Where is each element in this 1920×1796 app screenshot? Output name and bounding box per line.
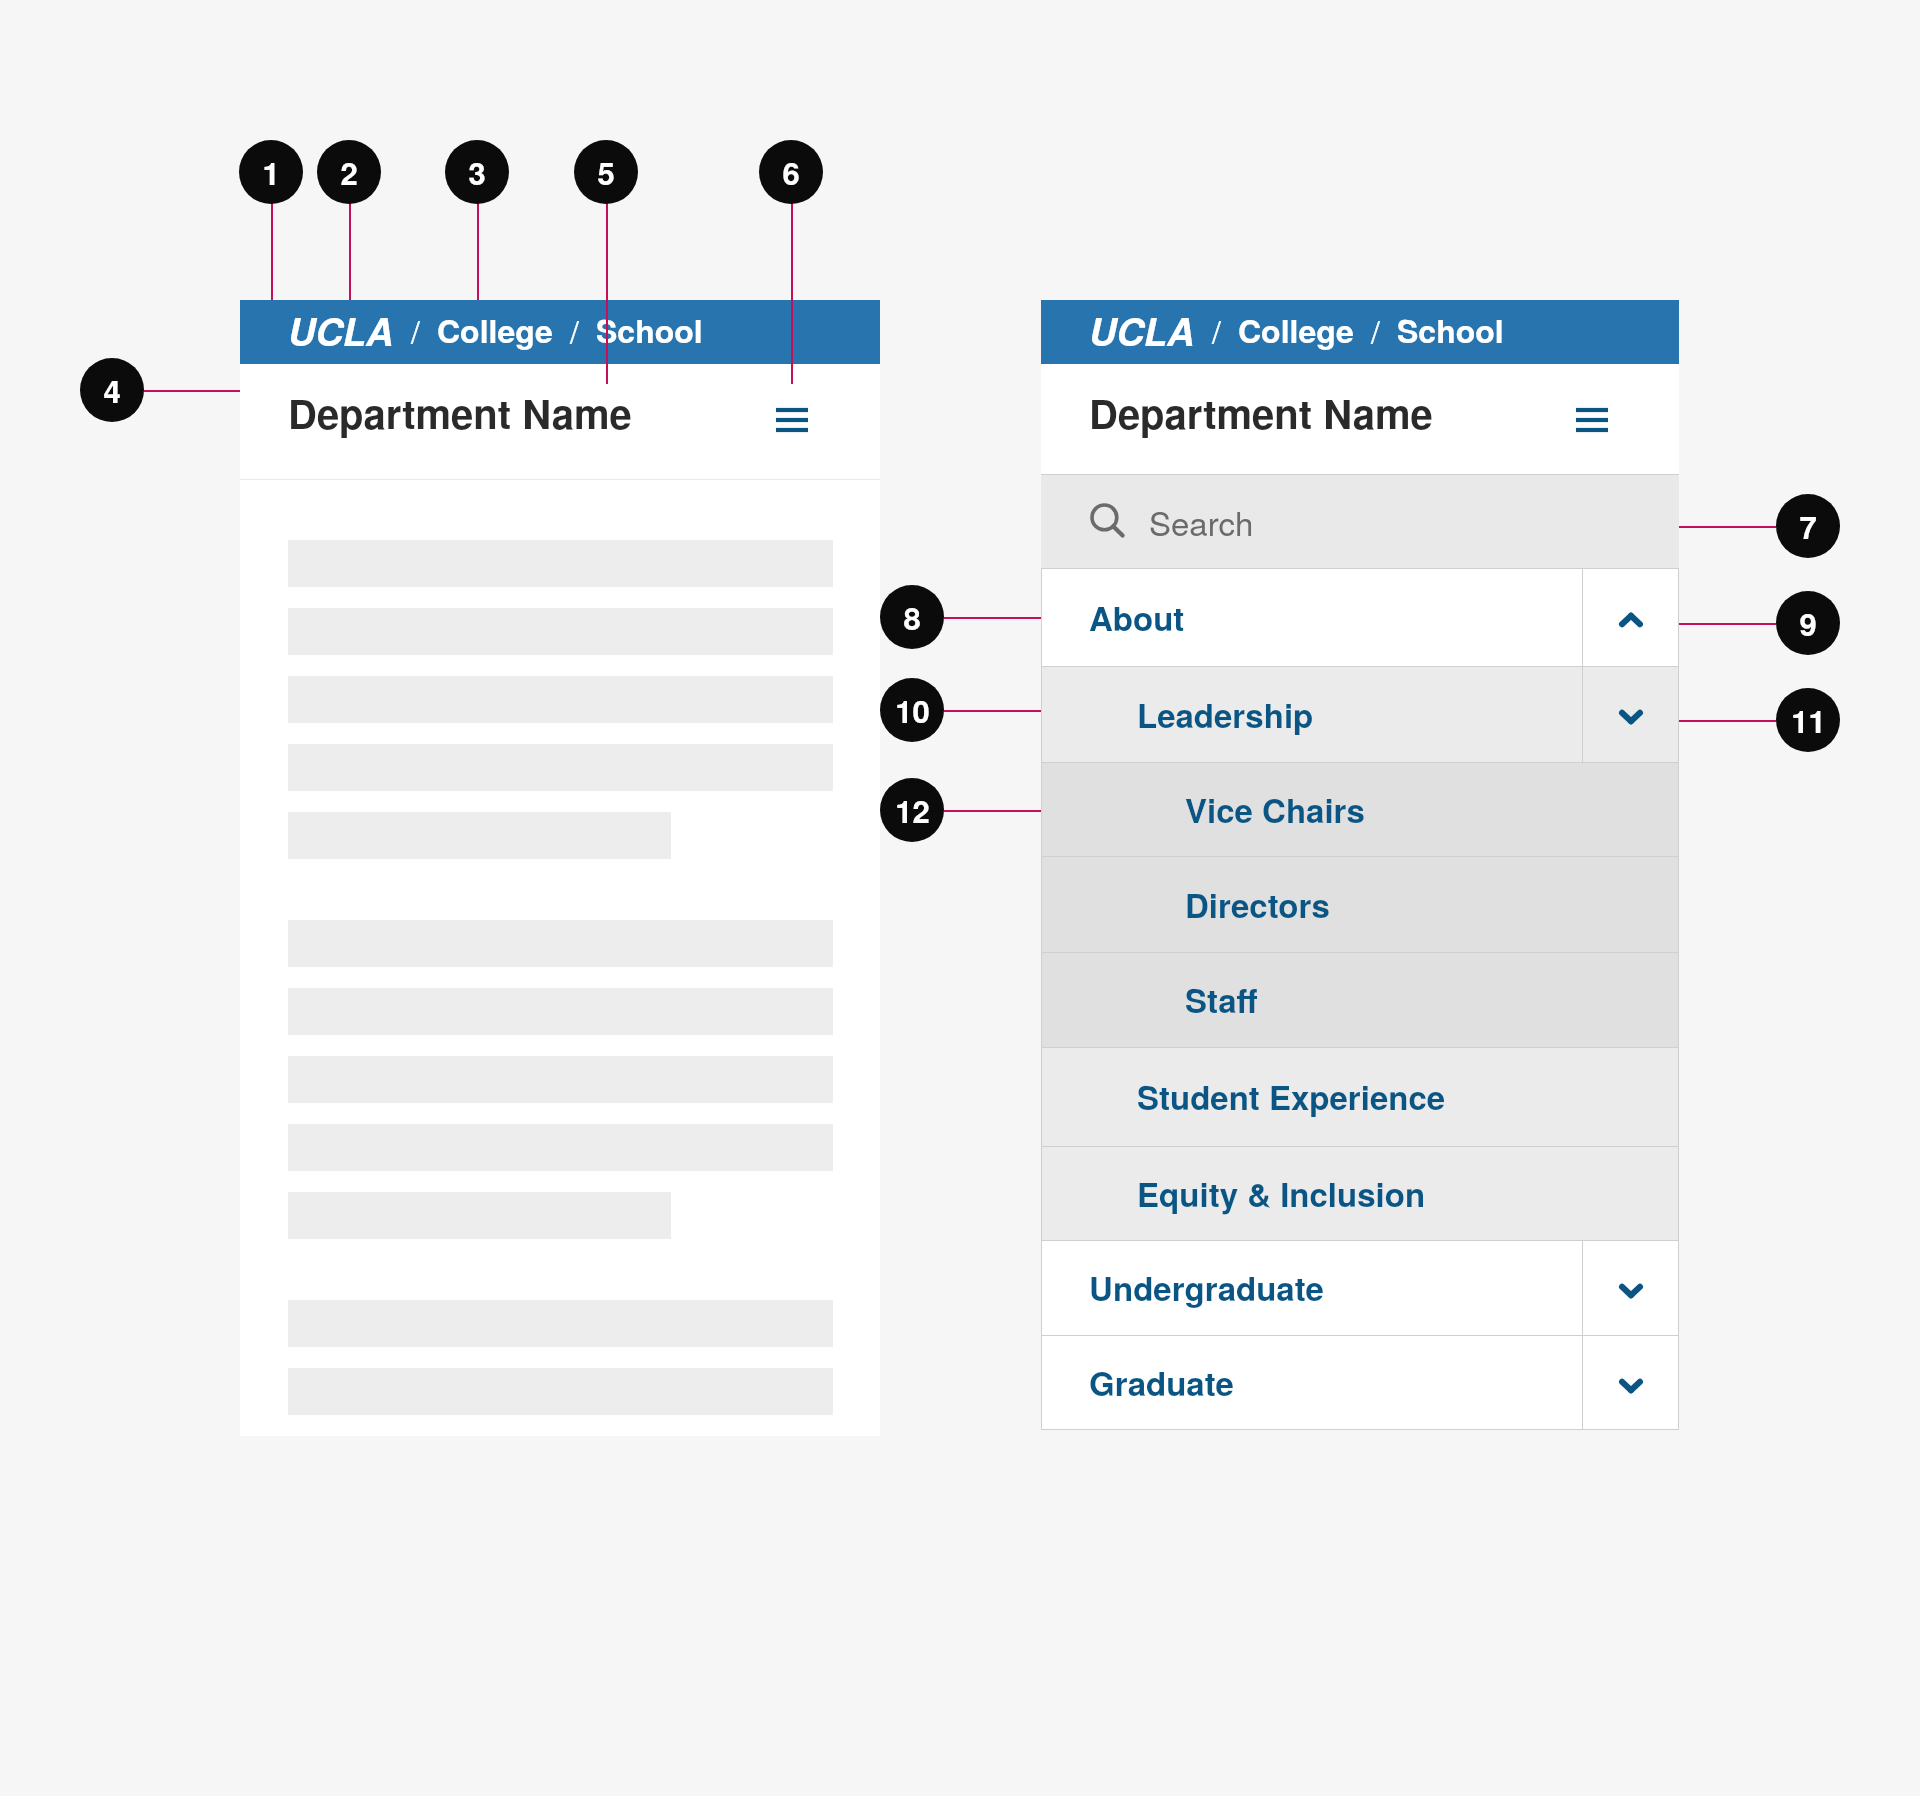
- button[interactable]: Expand Graduate: [1582, 1335, 1679, 1430]
- staticText: 3: [468, 150, 486, 194]
- button[interactable]: Expand Leadership: [1582, 666, 1679, 762]
- staticText: /: [1371, 307, 1380, 353]
- button[interactable]: College: [1238, 307, 1354, 353]
- button[interactable]: Leadership: [1041, 666, 1679, 762]
- button[interactable]: School: [596, 307, 703, 353]
- button[interactable]: Student Experience: [1041, 1047, 1679, 1146]
- staticText: Leadership: [1137, 691, 1314, 738]
- staticText: Directors: [1185, 881, 1330, 928]
- staticText: 8: [903, 595, 921, 639]
- staticText: 5: [597, 150, 615, 194]
- staticText: Graduate: [1089, 1359, 1234, 1406]
- staticText: About: [1089, 594, 1185, 641]
- button[interactable]: Expand Undergraduate: [1582, 1240, 1679, 1335]
- button[interactable]: Vice Chairs: [1041, 762, 1679, 856]
- staticText: Undergraduate: [1089, 1264, 1324, 1311]
- staticText: 11: [1791, 698, 1826, 742]
- button[interactable]: Open menu: [768, 396, 816, 444]
- staticText: 7: [1799, 504, 1817, 548]
- staticText: 4: [103, 368, 121, 412]
- staticText: 9: [1799, 601, 1817, 645]
- button[interactable]: UCLA: [288, 303, 394, 357]
- button[interactable]: Department Name: [288, 384, 632, 441]
- button[interactable]: Directors: [1041, 856, 1679, 952]
- button[interactable]: Equity & Inclusion: [1041, 1146, 1679, 1240]
- button[interactable]: School: [1397, 307, 1504, 353]
- staticText: 6: [782, 150, 800, 194]
- button[interactable]: Department Name: [1089, 384, 1433, 441]
- button[interactable]: UCLA: [1089, 303, 1195, 357]
- button[interactable]: Undergraduate: [1041, 1240, 1679, 1335]
- button[interactable]: About: [1041, 568, 1679, 666]
- staticText: /: [1212, 307, 1221, 353]
- staticText: Staff: [1185, 976, 1258, 1023]
- button[interactable]: Search: [1041, 474, 1679, 568]
- button[interactable]: College: [437, 307, 553, 353]
- staticText: /: [411, 307, 420, 353]
- staticText: 1: [262, 150, 280, 194]
- staticText: Equity & Inclusion: [1137, 1170, 1426, 1217]
- staticText: Student Experience: [1137, 1073, 1446, 1120]
- staticText: 2: [340, 150, 358, 194]
- button[interactable]: Open menu: [1568, 396, 1616, 444]
- staticText: 10: [895, 688, 930, 732]
- staticText: Vice Chairs: [1185, 786, 1365, 833]
- button[interactable]: Collapse About: [1582, 568, 1679, 666]
- staticText: Search: [1149, 498, 1254, 545]
- staticText: 12: [895, 788, 930, 832]
- staticText: /: [570, 307, 579, 353]
- button[interactable]: Staff: [1041, 952, 1679, 1047]
- button[interactable]: Graduate: [1041, 1335, 1679, 1430]
